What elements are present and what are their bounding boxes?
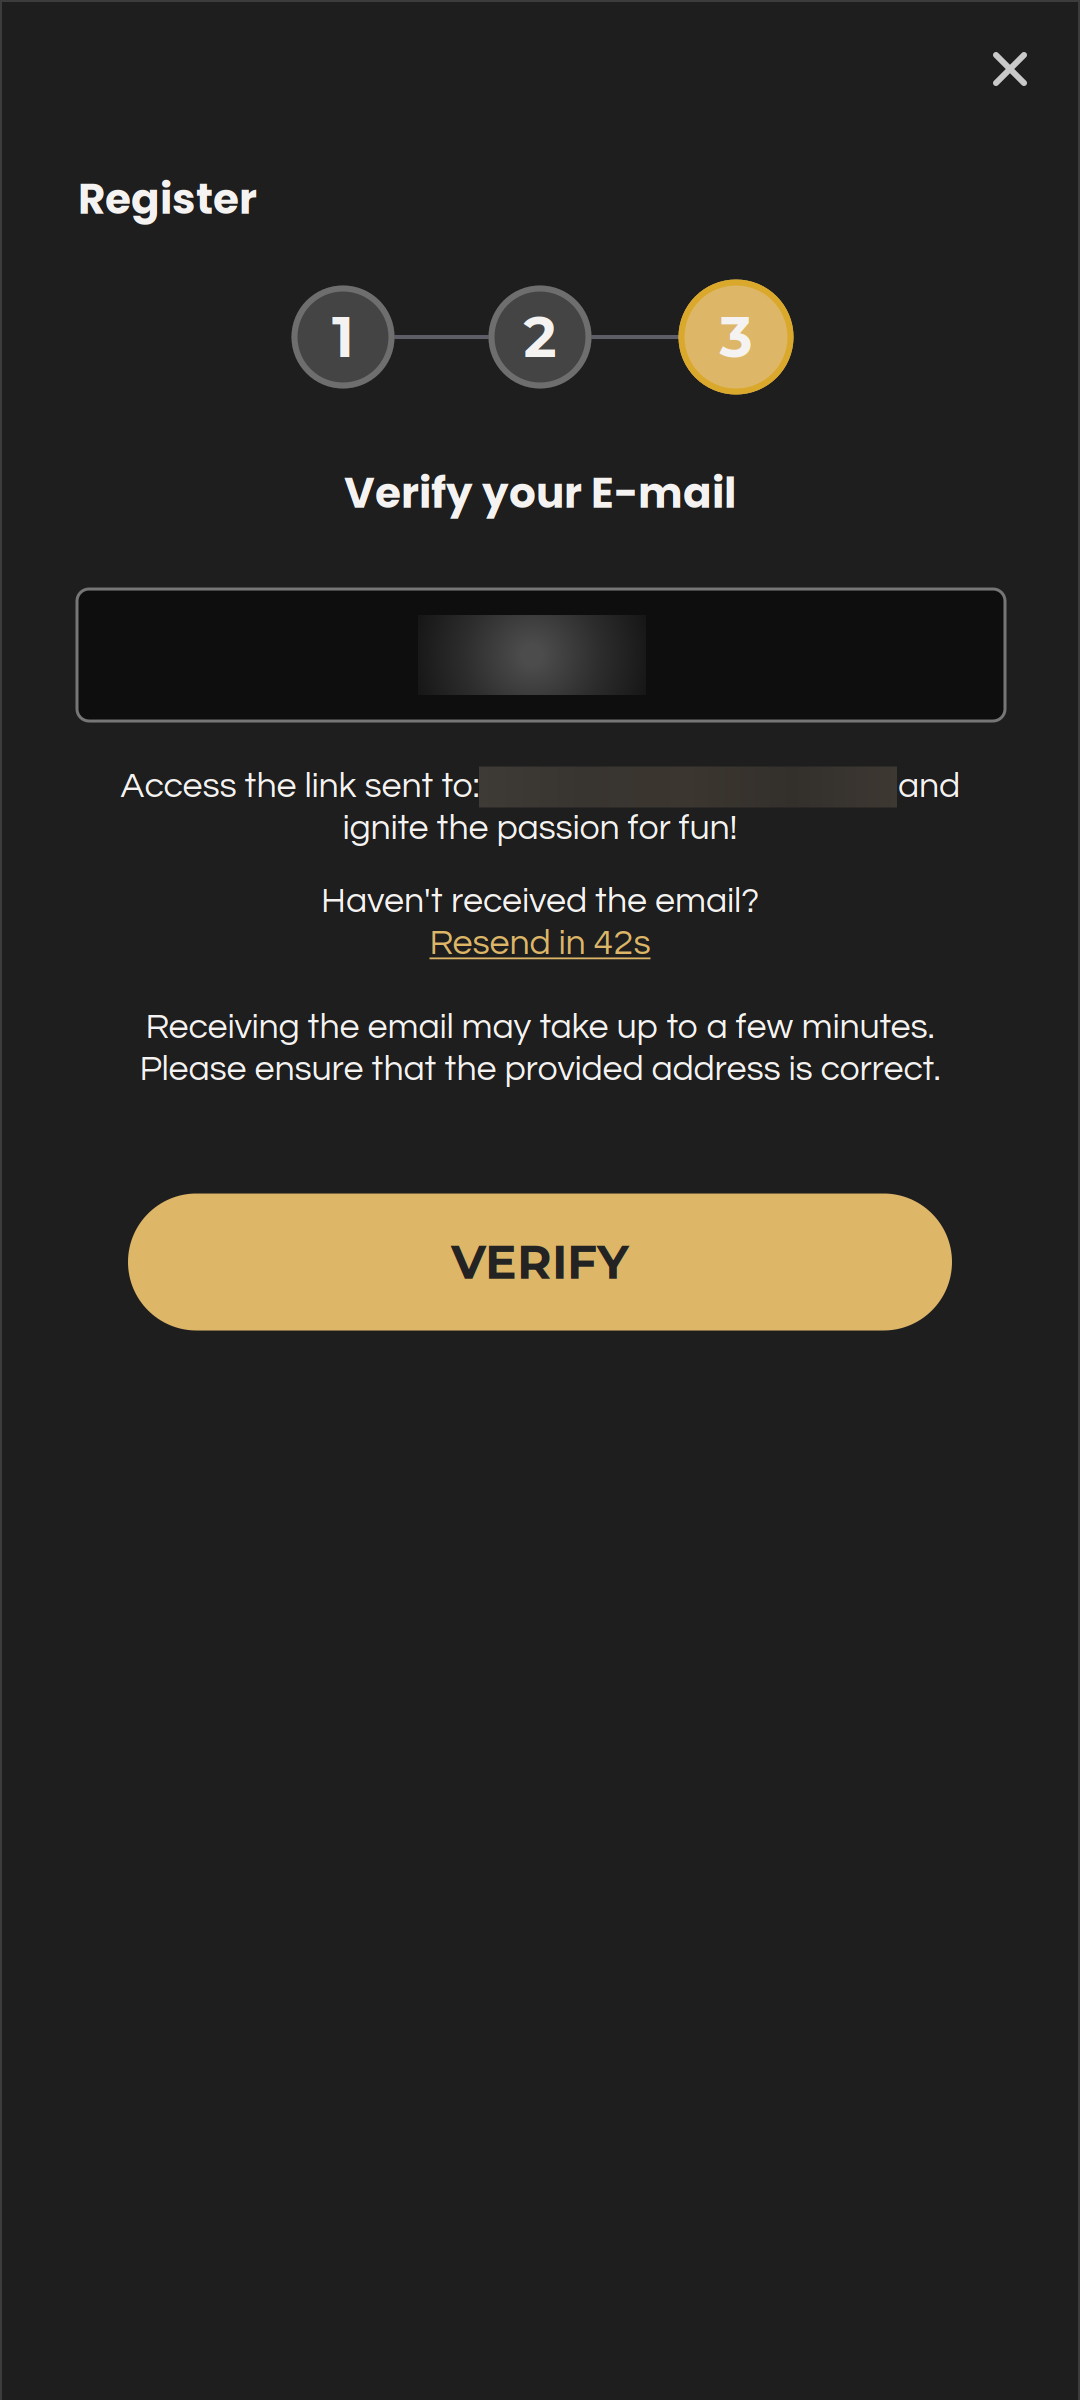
staticText: Haven't received the email? [321, 883, 759, 919]
staticText: Register [78, 169, 257, 228]
staticText: 2 [523, 303, 556, 371]
button[interactable]: VERIFY [128, 1193, 952, 1330]
button[interactable]: Resend in 42s [410, 915, 670, 971]
staticText: 1 [332, 303, 354, 371]
button[interactable]: Close [950, 9, 1070, 129]
staticText: and [898, 768, 960, 804]
staticText: Please ensure that the provided address … [139, 1051, 940, 1087]
staticText: Resend in 42s [429, 925, 650, 961]
staticText: Access the link sent to: [120, 768, 479, 804]
button[interactable]: E-mail address [77, 589, 1005, 721]
staticText: Receiving the email may take up to a few… [145, 1009, 934, 1045]
staticText: Verify your E-mail [344, 463, 736, 522]
staticText: VERIFY [451, 1233, 629, 1291]
staticText: ignite the passion for fun! [342, 810, 737, 846]
staticText: 3 [719, 303, 752, 371]
